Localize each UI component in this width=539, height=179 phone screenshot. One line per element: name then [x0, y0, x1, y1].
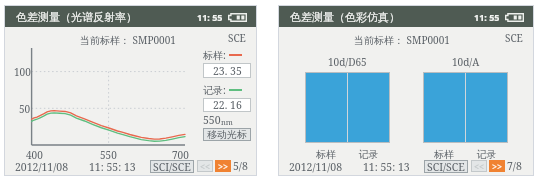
staticText: SCE [505, 31, 523, 45]
staticText: 2012/11/08 [15, 160, 69, 174]
staticText: 标样: [203, 48, 226, 62]
staticText: 22. 16 [213, 98, 242, 112]
staticText: 50 [19, 102, 31, 116]
staticText: 记录: [203, 83, 226, 97]
other: Battery level [505, 13, 524, 22]
staticText: 移动光标 [207, 128, 247, 141]
staticText: SCI/SCE [427, 160, 465, 173]
staticText: 5/8 [233, 159, 248, 173]
staticText: 当前标样： SMP0001 [354, 33, 450, 47]
staticText: 10d/D65 [328, 55, 367, 69]
staticText: SCE [228, 31, 246, 45]
staticText: 550 [100, 148, 117, 162]
button[interactable]: Previous page [471, 160, 487, 172]
staticText: 11: 55 [197, 11, 223, 23]
staticText: nm [221, 117, 233, 127]
staticText: 11: 55: 13 [363, 160, 410, 174]
staticText: 11: 55 [474, 11, 500, 23]
staticText: >> [492, 160, 503, 172]
button[interactable]: SCI/SCE [424, 160, 468, 173]
staticText: 7/8 [507, 159, 522, 173]
staticText: 23. 35 [213, 64, 242, 78]
button[interactable]: SCI/SCE [150, 160, 194, 173]
button[interactable]: 移动光标 [203, 128, 251, 141]
staticText: << [474, 160, 485, 172]
staticText: 记录 [465, 148, 508, 161]
staticText: 记录 [347, 148, 390, 161]
staticText: SCI/SCE [153, 160, 191, 173]
button[interactable]: Next page [489, 160, 505, 172]
staticText: 11: 55: 13 [89, 160, 136, 174]
staticText: << [200, 160, 211, 172]
staticText: 当前标样： SMP0001 [80, 33, 176, 47]
staticText: >> [218, 160, 229, 172]
staticText: 100 [14, 65, 31, 79]
staticText: 2012/11/08 [289, 160, 343, 174]
staticText: 色差测量（色彩仿真） [290, 10, 400, 24]
staticText: 标样 [423, 148, 465, 161]
other: Battery level [228, 13, 247, 22]
staticText: 550 [203, 113, 221, 127]
staticText: 标样 [305, 148, 347, 161]
button[interactable]: Previous page [197, 160, 213, 172]
button[interactable]: Next page [215, 160, 231, 172]
staticText: 色差测量（光谱反射率） [16, 10, 137, 24]
staticText: 10d/A [452, 55, 480, 69]
staticText: 400 [26, 148, 43, 162]
staticText: 700 [172, 148, 189, 162]
